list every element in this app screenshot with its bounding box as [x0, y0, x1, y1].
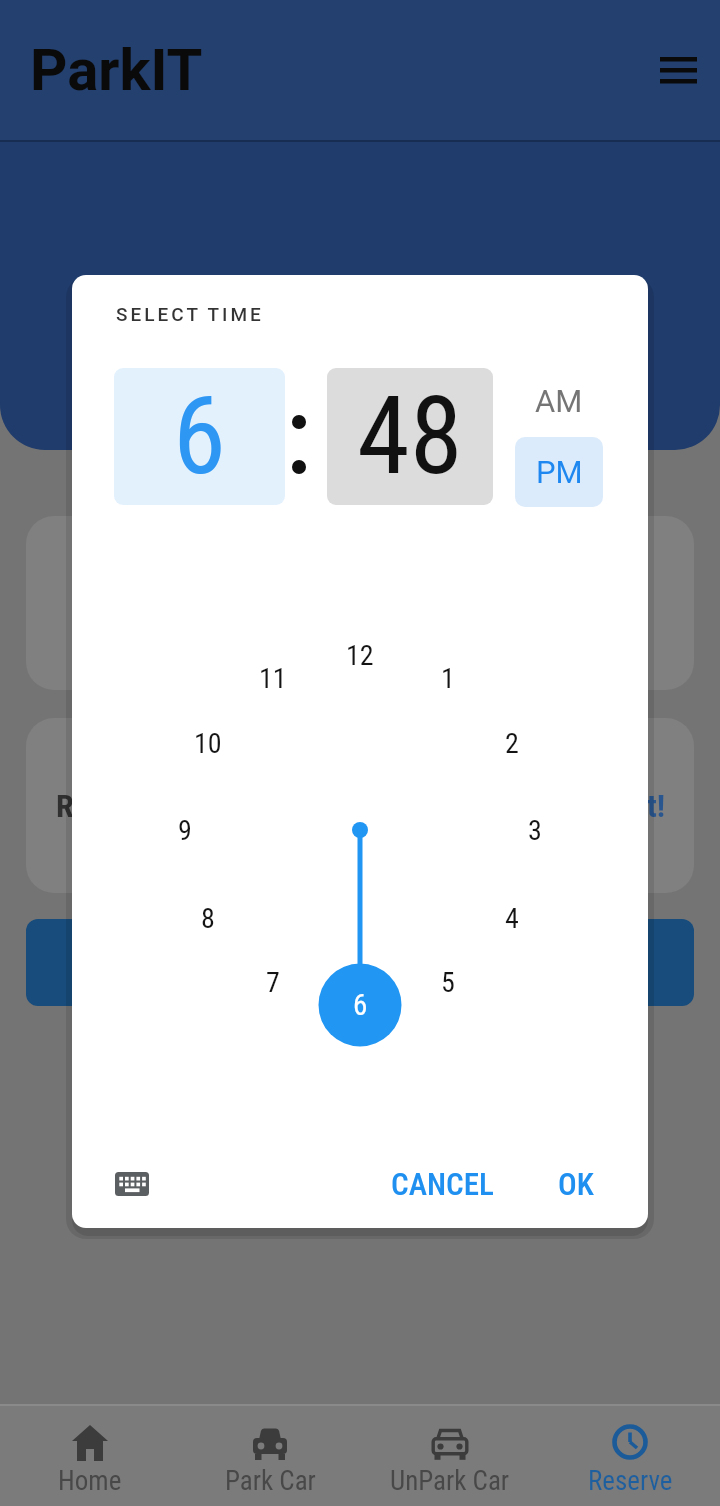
button[interactable]: 2	[482, 713, 542, 773]
button[interactable]: 4	[482, 888, 542, 948]
button[interactable]: 7	[243, 952, 303, 1012]
staticText: CANCEL	[391, 1166, 494, 1202]
button[interactable]: UnPark Car	[360, 1406, 540, 1506]
staticText: 5	[441, 966, 455, 999]
button[interactable]: 6	[114, 368, 285, 505]
staticText: 48	[357, 374, 463, 499]
staticText: 11	[259, 662, 287, 695]
staticText: 2	[505, 727, 519, 760]
button[interactable]	[650, 46, 706, 94]
button[interactable]: 11	[243, 648, 303, 708]
staticText: 9	[178, 814, 192, 847]
staticText: AM	[535, 383, 583, 419]
button[interactable]: 3	[505, 800, 565, 860]
button[interactable]: 8	[178, 888, 238, 948]
staticText: ParkIT	[30, 36, 203, 104]
button[interactable]: PM	[515, 437, 603, 507]
button[interactable]	[103, 1157, 161, 1211]
button[interactable]: 10	[178, 713, 238, 773]
button[interactable]: 12	[330, 625, 390, 685]
staticText: SELECT TIME	[116, 303, 264, 325]
staticText: 3	[528, 814, 542, 847]
button[interactable]	[26, 919, 694, 1006]
staticText: 4	[505, 902, 519, 935]
button[interactable]: CANCEL	[368, 1156, 516, 1212]
staticText: R	[56, 787, 74, 825]
button[interactable]: OK	[516, 1156, 636, 1212]
staticText: 7	[266, 966, 280, 999]
staticText: 12	[346, 639, 374, 672]
staticText: Home	[58, 1465, 122, 1497]
button[interactable]: Home	[0, 1406, 180, 1506]
staticText: t!	[647, 787, 666, 825]
button[interactable]: 5	[418, 952, 478, 1012]
staticText: PM	[536, 454, 583, 490]
button[interactable]: 6	[330, 975, 390, 1035]
button[interactable]: AM	[515, 371, 603, 431]
staticText: Park Car	[225, 1465, 316, 1497]
staticText: 6	[353, 988, 368, 1022]
staticText: 1	[441, 662, 455, 695]
button[interactable]: 1	[418, 648, 478, 708]
button[interactable]: R	[26, 718, 694, 893]
button[interactable]: 48	[327, 368, 493, 505]
staticText: 8	[201, 902, 215, 935]
button[interactable]: Park Car	[180, 1406, 360, 1506]
button[interactable]: 9	[155, 800, 215, 860]
staticText: Reserve	[588, 1465, 673, 1497]
staticText: 10	[194, 727, 222, 760]
button[interactable]: Reserve	[540, 1406, 720, 1506]
staticText: UnPark Car	[390, 1465, 510, 1497]
staticText: 6	[173, 374, 226, 499]
staticText: OK	[558, 1166, 594, 1202]
